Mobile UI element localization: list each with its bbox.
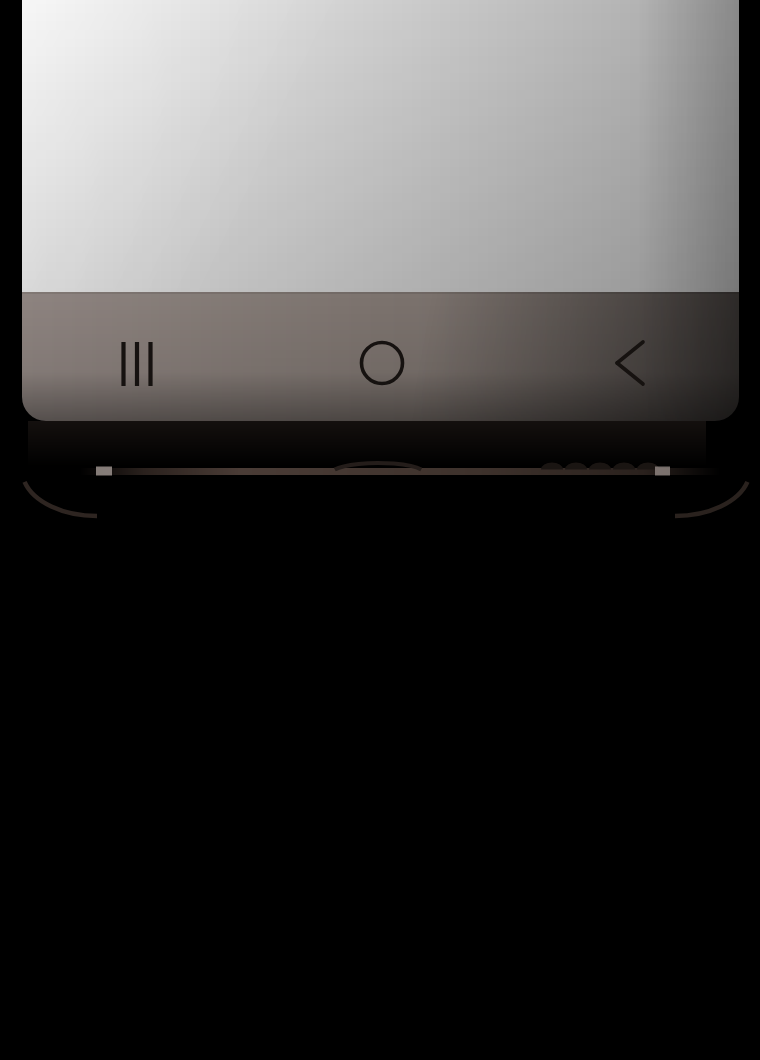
button[interactable]: Recent apps	[89, 316, 185, 412]
button[interactable]: Home	[334, 315, 430, 411]
button[interactable]: Back	[579, 315, 675, 411]
